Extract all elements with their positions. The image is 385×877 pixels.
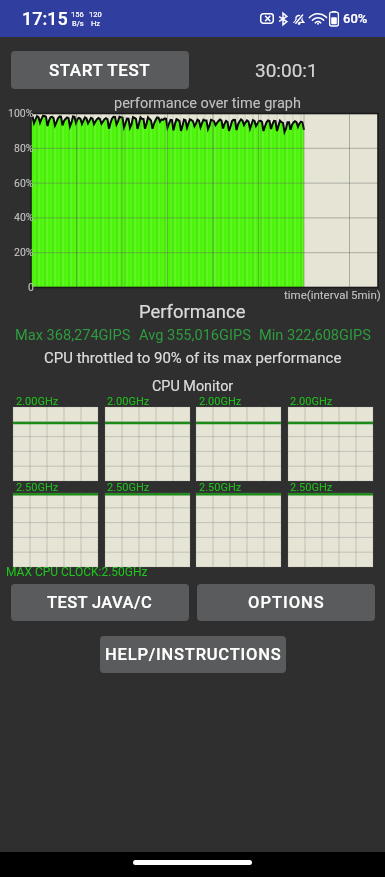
staticText: 0 [28,281,34,293]
other: Battery [329,11,339,26]
staticText: Avg 355,016GIPS [139,326,251,343]
staticText: CPU Monitor [152,378,234,395]
staticText: 17:15 [22,8,68,29]
staticText: 60% [343,11,368,26]
button[interactable]: HELP/INSTRUCTIONS [100,636,286,673]
other: Wi-Fi [310,13,326,25]
staticText: Min 322,608GIPS [259,326,371,343]
button[interactable]: TEST JAVA/C [11,584,189,621]
other: No SIM card [260,13,274,24]
staticText: 40% [14,211,34,223]
staticText: time(interval 5min) [284,288,381,301]
staticText: START TEST [49,60,151,80]
staticText: 2.00GHz [16,395,59,408]
staticText: 100% [8,107,34,119]
staticText: 30:00:1 [255,59,318,81]
staticText: OPTIONS [248,593,325,612]
staticText: 2.50GHz [107,481,150,494]
staticText: Max 368,274GIPS [15,326,131,343]
staticText: 80% [14,142,34,154]
staticText: 2.50GHz [199,481,242,494]
staticText: 120 [89,10,102,19]
staticText: performance over time graph [114,95,301,112]
staticText: B/s [72,19,84,28]
staticText: CPU throttled to 90% of its max performa… [44,349,342,367]
staticText: 60% [14,177,34,189]
other: Bluetooth [279,13,287,25]
staticText: 2.00GHz [290,395,333,408]
staticText: 2.00GHz [107,395,150,408]
button[interactable]: OPTIONS [197,584,375,621]
staticText: HELP/INSTRUCTIONS [105,645,282,664]
other: Notifications off [294,13,304,25]
staticText: 156 [71,10,84,19]
staticText: Performance [139,301,246,323]
staticText: 20% [14,246,34,258]
button[interactable]: START TEST [11,51,189,89]
staticText: 2.00GHz [199,395,242,408]
staticText: MAX CPU CLOCK:2.50GHz [6,565,148,579]
staticText: 2.50GHz [16,481,59,494]
staticText: Hz [91,19,101,28]
staticText: 2.50GHz [290,481,333,494]
staticText: TEST JAVA/C [47,593,153,612]
